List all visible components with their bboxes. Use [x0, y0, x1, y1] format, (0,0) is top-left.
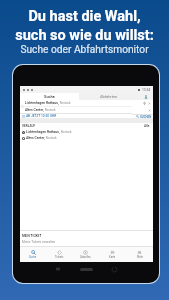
- button[interactable]: Karte: [99, 247, 126, 262]
- button[interactable]: Home: [72, 261, 100, 277]
- staticText: Altes Center,: [26, 136, 45, 140]
- staticText: Lichtenhagen Rathaus,: [26, 130, 60, 134]
- button[interactable]: Clear origin: [147, 101, 152, 106]
- staticText: Tickets: [55, 256, 64, 259]
- button[interactable]: Suche: [20, 247, 46, 262]
- button[interactable]: Tickets: [46, 247, 72, 262]
- button[interactable]: Aktuelles: [72, 247, 99, 262]
- button[interactable]: Clear destination: [147, 108, 152, 113]
- button[interactable]: Passengers: [139, 93, 153, 100]
- button[interactable]: Suche: [20, 93, 79, 100]
- staticText: SUCHEN: [140, 115, 152, 118]
- staticText: Suche: [29, 256, 37, 259]
- staticText: Rostock: [59, 101, 71, 105]
- staticText: Rostock: [45, 136, 57, 140]
- staticText: Lichtenhagen Rathaus,: [25, 101, 59, 105]
- staticText: Meine Tickets verwalten: [22, 240, 56, 244]
- button[interactable]: Use current location: [142, 101, 147, 106]
- button[interactable]: Alle: [144, 124, 150, 128]
- button[interactable]: SUCHEN: [132, 115, 153, 118]
- staticText: Suche: [44, 94, 55, 99]
- button[interactable]: Mehr: [126, 247, 153, 262]
- button[interactable]: Back: [100, 261, 128, 277]
- button[interactable]: AB JETZT 10:50 UHR: [20, 114, 132, 118]
- staticText: AB JETZT 10:50 UHR: [26, 114, 57, 118]
- button[interactable]: MEIN TICKET: [20, 231, 153, 246]
- staticText: Karte: [109, 256, 116, 259]
- staticText: Du hast die Wahl, such so wie du willst:: [15, 8, 154, 43]
- button[interactable]: Abfahrten: [79, 93, 139, 100]
- staticText: MEIN TICKET: [22, 234, 42, 238]
- staticText: Abfahrten: [100, 94, 118, 99]
- staticText: Aktuelles: [80, 256, 91, 259]
- button[interactable]: Altes Center,: [20, 135, 153, 141]
- button[interactable]: Lichtenhagen Rathaus,: [20, 129, 153, 135]
- staticText: Rostock: [60, 130, 72, 134]
- staticText: Suche oder Abfahrtsmonitor: [20, 44, 149, 56]
- staticText: Altes Center,: [25, 108, 44, 112]
- staticText: 10:34: [142, 88, 151, 92]
- staticText: Rostock: [44, 108, 56, 112]
- staticText: VERLAUF: [22, 124, 36, 128]
- button[interactable]: Recent apps: [44, 261, 72, 277]
- staticText: Mehr: [137, 256, 143, 259]
